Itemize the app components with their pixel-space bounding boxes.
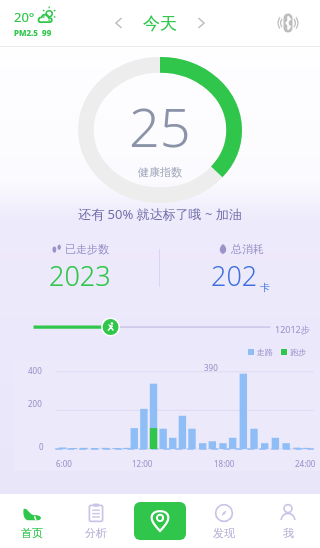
staticText: 6:00 [56, 458, 72, 469]
button[interactable]: Previous day [105, 9, 133, 37]
staticText: 12012步 [275, 323, 310, 335]
button[interactable]: Step goal progress [0, 317, 320, 341]
button[interactable]: 总消耗 [160, 237, 320, 299]
staticText: 25 [129, 89, 191, 163]
staticText: 分析 [85, 526, 107, 540]
staticText: 今天 [143, 13, 177, 34]
button[interactable]: 首页 [0, 494, 64, 548]
button[interactable]: 我 [256, 494, 320, 548]
staticText: 18:00 [214, 458, 235, 469]
staticText: 202 [211, 257, 258, 294]
staticText: 我 [283, 526, 294, 540]
button[interactable]: 发现 [192, 494, 256, 548]
button[interactable]: Bluetooth connected [272, 7, 304, 39]
staticText: 24:00 [295, 458, 316, 469]
staticText: 200 [28, 398, 42, 409]
staticText: 发现 [213, 526, 235, 540]
staticText: 已走步数 [65, 242, 109, 256]
staticText: 2023 [49, 257, 111, 294]
staticText: 400 [28, 365, 42, 376]
button[interactable]: 分析 [64, 494, 128, 548]
staticText: PM2.5 99 [14, 27, 52, 38]
button[interactable]: 已走步数 [0, 237, 159, 299]
button[interactable]: Next day [187, 9, 215, 37]
staticText: 12:00 [132, 458, 153, 469]
staticText: 首页 [21, 526, 43, 540]
staticText: 走路 [257, 347, 273, 357]
button[interactable]: Weather [14, 8, 56, 38]
button[interactable]: Hourly activity chart [14, 361, 320, 471]
staticText: 跑步 [290, 347, 306, 357]
staticText: 0 [39, 441, 44, 452]
staticText: 还有 50% 就达标了哦 ~ 加油 [78, 205, 242, 223]
staticText: 390 [204, 362, 218, 373]
staticText: 20° [14, 8, 35, 26]
staticText: 健康指数 [138, 165, 182, 179]
button[interactable]: Track location [134, 502, 186, 540]
staticText: 总消耗 [231, 242, 264, 256]
staticText: 卡 [260, 281, 270, 294]
button[interactable]: 今天 [143, 13, 177, 34]
